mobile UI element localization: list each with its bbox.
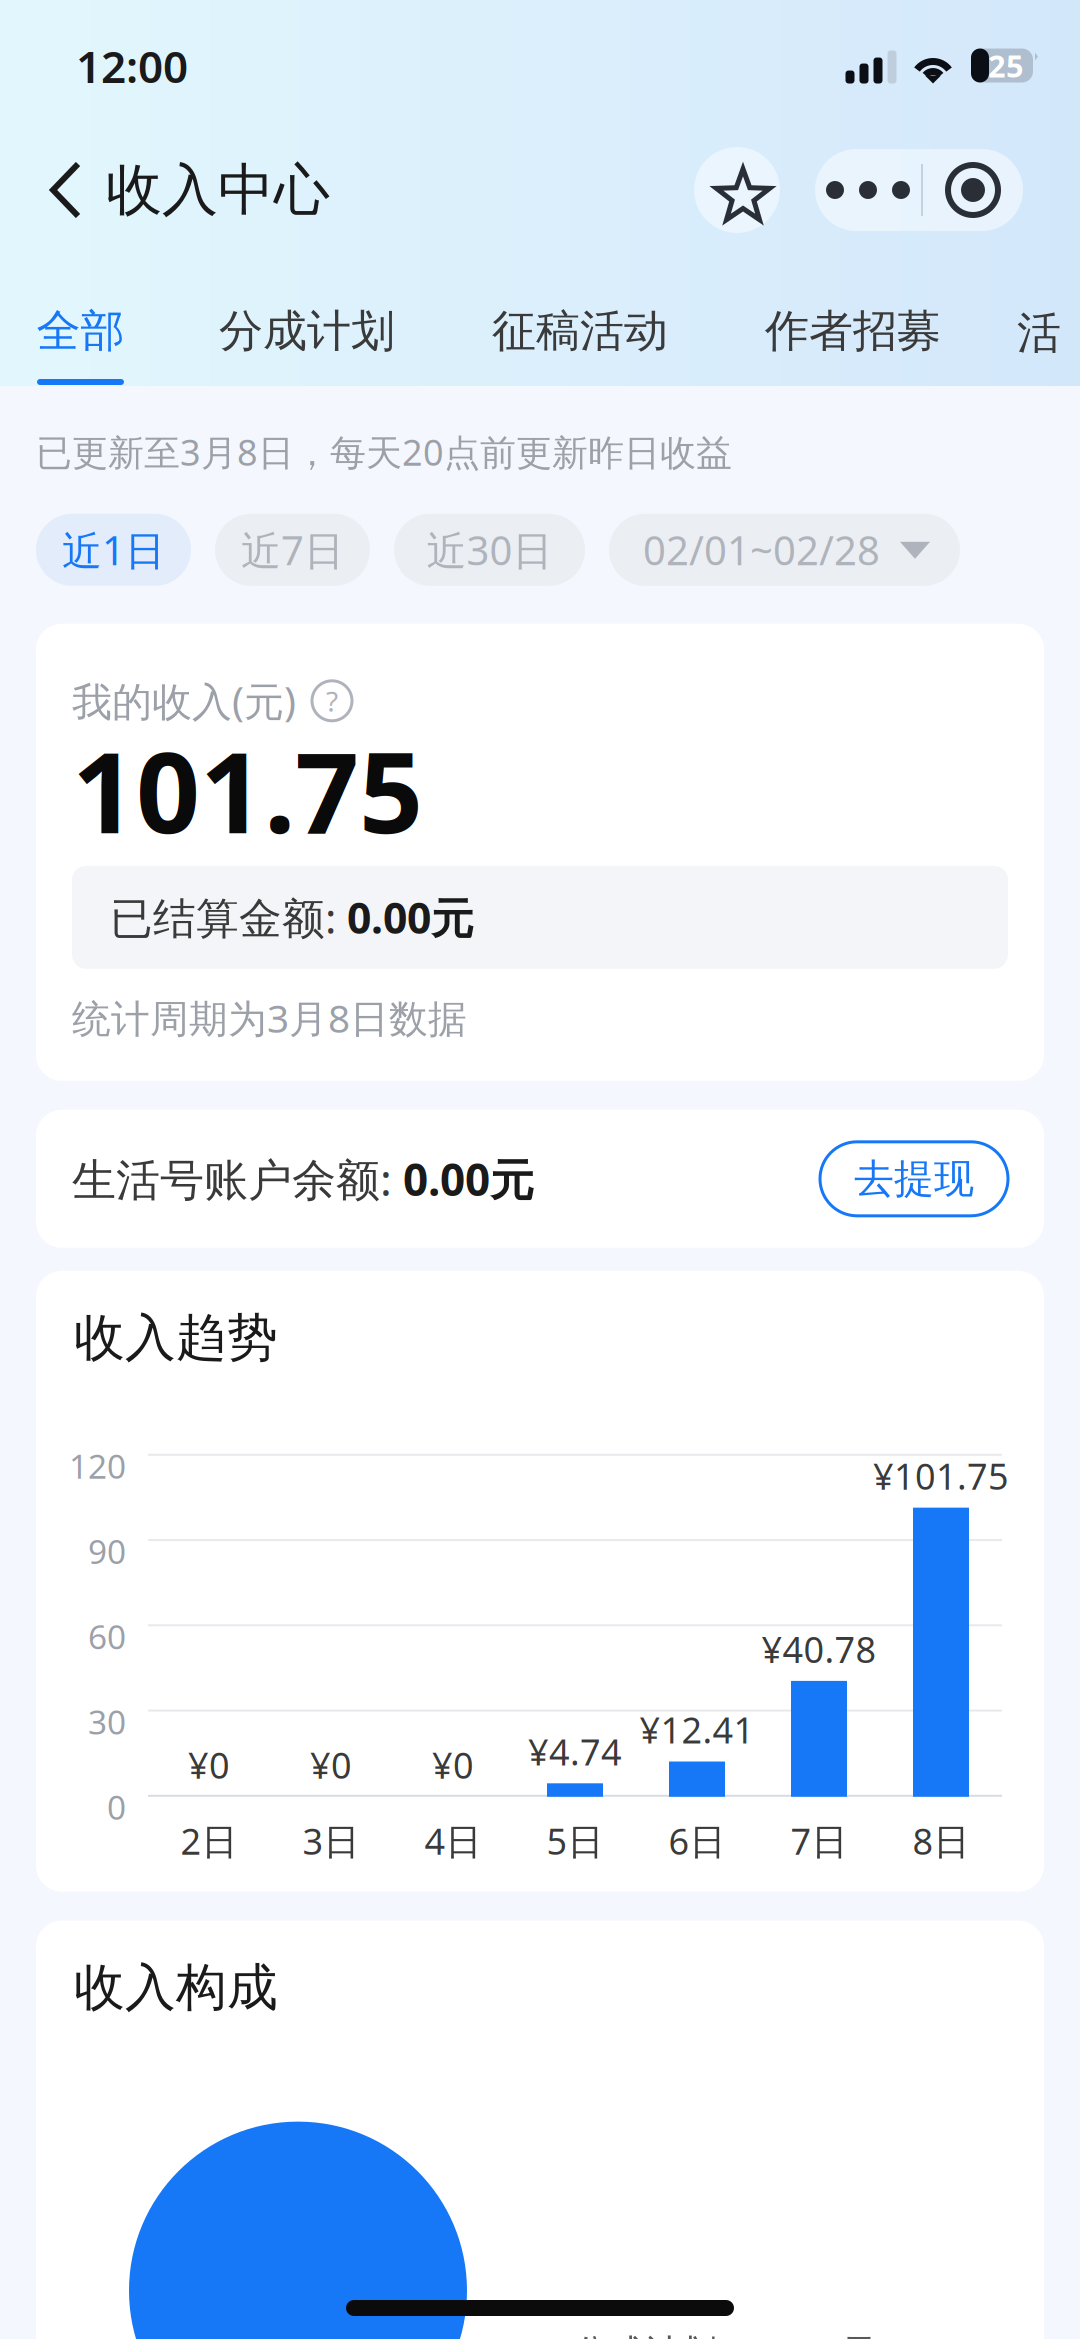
staticText: 4日 <box>424 1817 481 1865</box>
button[interactable]: 02/01~02/28 <box>609 514 960 586</box>
button[interactable]: 作者招募 <box>707 264 999 386</box>
staticText: 已更新至3月8日，每天20点前更新昨日收益 <box>36 428 732 476</box>
staticText: 101.75 <box>72 715 423 864</box>
button[interactable]: 全部 <box>0 264 161 386</box>
staticText: 近7日 <box>241 523 344 576</box>
staticText: 近1日 <box>62 523 165 576</box>
button[interactable]: 近1日 <box>36 514 191 586</box>
staticText: ¥4.74 <box>528 1727 622 1775</box>
button[interactable]: 收入中心 <box>0 130 350 250</box>
staticText: ¥0 <box>188 1741 230 1789</box>
staticText: 生活号账户余额: <box>72 1150 403 1208</box>
staticText: 5日 <box>546 1817 603 1865</box>
staticText: 近30日 <box>426 523 552 576</box>
staticText: 8日 <box>912 1817 969 1865</box>
staticText: 作者招募 <box>765 304 941 358</box>
staticText: 征稿活动 <box>492 304 668 358</box>
staticText: 全部 <box>36 304 124 358</box>
staticText: 分成计划 <box>219 304 395 358</box>
staticText: 120 <box>69 1444 126 1488</box>
staticText: 0.00元 <box>347 889 474 946</box>
staticText: 收入中心 <box>106 156 330 224</box>
button[interactable]: Close <box>923 149 1023 231</box>
button[interactable]: Favorite <box>694 147 780 233</box>
staticText: 收入趋势 <box>74 1307 278 1369</box>
button[interactable]: More <box>815 149 921 231</box>
staticText: 90 <box>88 1529 126 1573</box>
staticText: 收入构成 <box>74 1956 278 2019</box>
staticText: 0.00元 <box>403 1150 534 1208</box>
staticText: ? <box>326 682 338 719</box>
staticText: 3日 <box>302 1817 359 1865</box>
staticText: 统计周期为3月8日数据 <box>72 992 467 1043</box>
staticText: ¥40.78 <box>761 1625 876 1673</box>
staticText: 2日 <box>180 1817 237 1865</box>
staticText: 去提现 <box>854 1154 974 1203</box>
staticText: 0 <box>107 1785 126 1829</box>
staticText: 60 <box>88 1614 126 1658</box>
staticText: ¥12.41 <box>639 1706 754 1753</box>
button[interactable]: 近30日 <box>394 514 585 586</box>
staticText: 我的收入(元) <box>72 674 296 727</box>
staticText: 活 <box>1017 306 1061 360</box>
staticText: 已结算金额: <box>110 889 347 946</box>
button[interactable]: 征稿活动 <box>453 264 707 386</box>
staticText: 02/01~02/28 <box>643 523 880 576</box>
staticText: 30 <box>88 1699 126 1744</box>
button[interactable]: 近7日 <box>215 514 370 586</box>
button[interactable]: 去提现 <box>820 1142 1008 1216</box>
staticText: ¥0 <box>310 1741 352 1789</box>
staticText: ¥101.75 <box>873 1452 1009 1500</box>
staticText: ¥0 <box>432 1741 474 1789</box>
button[interactable]: 分成计划 <box>161 264 453 386</box>
staticText: 12:00 <box>76 37 188 95</box>
staticText: 6日 <box>668 1817 725 1865</box>
staticText: 分成计划 101.75元(100%) <box>573 2328 992 2339</box>
staticText: 25 <box>988 45 1024 86</box>
staticText: 7日 <box>790 1817 847 1865</box>
